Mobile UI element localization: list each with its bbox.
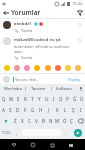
staticText: A	[2, 107, 5, 113]
staticText: Yorum ekle...	[15, 77, 67, 82]
button[interactable]: Back	[0, 7, 11, 18]
button[interactable]: Paylaş	[67, 77, 82, 82]
staticText: P	[66, 96, 69, 102]
staticText: Ö	[63, 118, 67, 124]
staticText: bulambdan, alfimdb uz analnson adan	[14, 44, 76, 54]
staticText: Yorumlar	[11, 8, 41, 17]
button[interactable]: J	[45, 104, 53, 115]
button[interactable]: B	[40, 115, 47, 126]
staticText: H	[39, 107, 43, 113]
staticText: Kullanıcı	[56, 86, 73, 92]
staticText: annbdz1	[14, 21, 32, 27]
button[interactable]: Merhaba	[0, 84, 25, 93]
staticText: Ğ	[73, 96, 77, 102]
staticText: F	[24, 107, 27, 113]
button[interactable]: Keyboard switcher	[66, 140, 76, 150]
staticText: B	[42, 118, 45, 124]
button[interactable]: V	[33, 115, 40, 126]
button[interactable]: Back	[9, 140, 19, 150]
staticText: R	[24, 96, 27, 102]
button[interactable]: Emoji	[54, 64, 62, 72]
button[interactable]: D	[14, 104, 21, 115]
button[interactable]: Share	[74, 7, 85, 18]
staticText: V	[35, 118, 38, 124]
button[interactable]: Ğ	[71, 93, 78, 104]
staticText: Ş	[72, 107, 75, 113]
button[interactable]: Send	[70, 127, 85, 138]
button[interactable]: Ö	[61, 115, 68, 126]
button[interactable]: U	[43, 93, 50, 104]
staticText: Z	[14, 118, 17, 124]
button[interactable]: N	[47, 115, 54, 126]
button[interactable]: Emoji	[23, 64, 31, 72]
staticText: Paylaş	[68, 77, 81, 82]
button[interactable]: Like	[76, 21, 82, 27]
button[interactable]: Emoji	[33, 64, 41, 72]
staticText: D	[16, 107, 20, 113]
staticText: O	[59, 96, 63, 102]
button[interactable]: T	[29, 93, 36, 104]
button[interactable]: .	[62, 127, 70, 138]
staticText: Q	[2, 96, 6, 102]
staticText: K	[56, 107, 59, 113]
button[interactable]: Home	[28, 140, 38, 150]
button[interactable]: I	[50, 93, 57, 104]
button[interactable]: Recents	[47, 140, 57, 150]
button[interactable]: Ü	[78, 93, 85, 104]
button[interactable]: mdLzal00cudvud eu şıt	[0, 35, 85, 62]
button[interactable]: Y	[36, 93, 43, 104]
staticText: X	[21, 118, 24, 124]
button[interactable]: Like	[76, 37, 82, 43]
button[interactable]: Emoji	[74, 64, 82, 72]
button[interactable]: E	[15, 93, 22, 104]
staticText: I	[80, 107, 82, 113]
button[interactable]: Ç	[68, 115, 75, 126]
button[interactable]: O	[57, 93, 64, 104]
button[interactable]: Voice input	[77, 84, 85, 93]
button[interactable]: Emoji	[3, 64, 11, 72]
button[interactable]: I	[77, 104, 85, 115]
button[interactable]: Emoji	[64, 64, 72, 72]
staticText: 1g Yanıtla	[14, 55, 33, 60]
button[interactable]: Q	[0, 93, 8, 104]
staticText: .	[65, 130, 67, 136]
staticText: mdLzal00cudvud eu şıt	[14, 37, 61, 43]
button[interactable]: Emoji	[44, 64, 52, 72]
staticText: T	[31, 96, 34, 102]
button[interactable]: Shift	[0, 115, 11, 126]
button[interactable]: F	[21, 104, 29, 115]
staticText: J	[48, 107, 50, 113]
staticText: Merhaba	[4, 86, 22, 92]
staticText: L	[64, 107, 67, 113]
button[interactable]: K	[53, 104, 61, 115]
button[interactable]: Backspace	[75, 115, 85, 126]
button[interactable]: C	[26, 115, 33, 126]
button[interactable]: A	[0, 104, 7, 115]
staticText: Ç	[70, 118, 73, 124]
button[interactable]: X	[19, 115, 26, 126]
button[interactable]: M	[54, 115, 61, 126]
button[interactable]: Tamam	[26, 84, 51, 93]
staticText: Y	[38, 96, 41, 102]
button[interactable]: G	[29, 104, 37, 115]
button[interactable]: Emoji	[13, 64, 21, 72]
button[interactable]: annbdz1	[0, 19, 85, 35]
staticText: I	[53, 96, 55, 102]
button[interactable]: ?123	[0, 127, 13, 138]
button[interactable]: Ş	[69, 104, 77, 115]
staticText: U	[45, 96, 49, 102]
button[interactable]: W	[8, 93, 15, 104]
button[interactable]: ,	[13, 127, 21, 138]
button[interactable]: P	[64, 93, 71, 104]
staticText: W	[9, 96, 14, 102]
staticText: C	[28, 118, 31, 124]
button[interactable]: Z	[11, 115, 19, 126]
button[interactable]: H	[37, 104, 45, 115]
button[interactable]: R	[22, 93, 29, 104]
staticText: N	[49, 118, 53, 124]
button[interactable]: Kullanıcı	[52, 84, 77, 93]
button[interactable]: L	[61, 104, 69, 115]
button[interactable]: S	[7, 104, 14, 115]
staticText: M	[55, 118, 60, 124]
